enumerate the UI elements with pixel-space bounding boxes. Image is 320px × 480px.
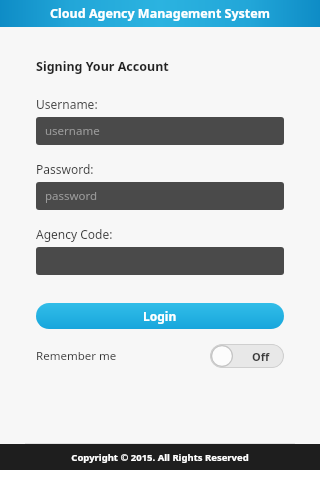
- staticText: Username:: [36, 96, 98, 112]
- button[interactable]: password: [36, 182, 284, 210]
- staticText: Agency Code:: [36, 226, 113, 242]
- staticText: Login: [143, 308, 177, 324]
- button[interactable]: Remember me toggle, Off: [210, 344, 284, 368]
- staticText: Copyright © 2015. All Rights Reserved: [71, 451, 249, 464]
- staticText: Remember me: [36, 348, 117, 364]
- button[interactable]: Login: [36, 303, 284, 329]
- staticText: Cloud Agency Management System: [50, 5, 270, 22]
- staticText: Password:: [36, 161, 94, 177]
- button[interactable]: [36, 247, 284, 275]
- staticText: password: [45, 188, 98, 204]
- button[interactable]: username: [36, 117, 284, 145]
- staticText: Off: [252, 349, 270, 364]
- staticText: Signing Your Account: [36, 58, 169, 75]
- staticText: username: [45, 123, 100, 139]
